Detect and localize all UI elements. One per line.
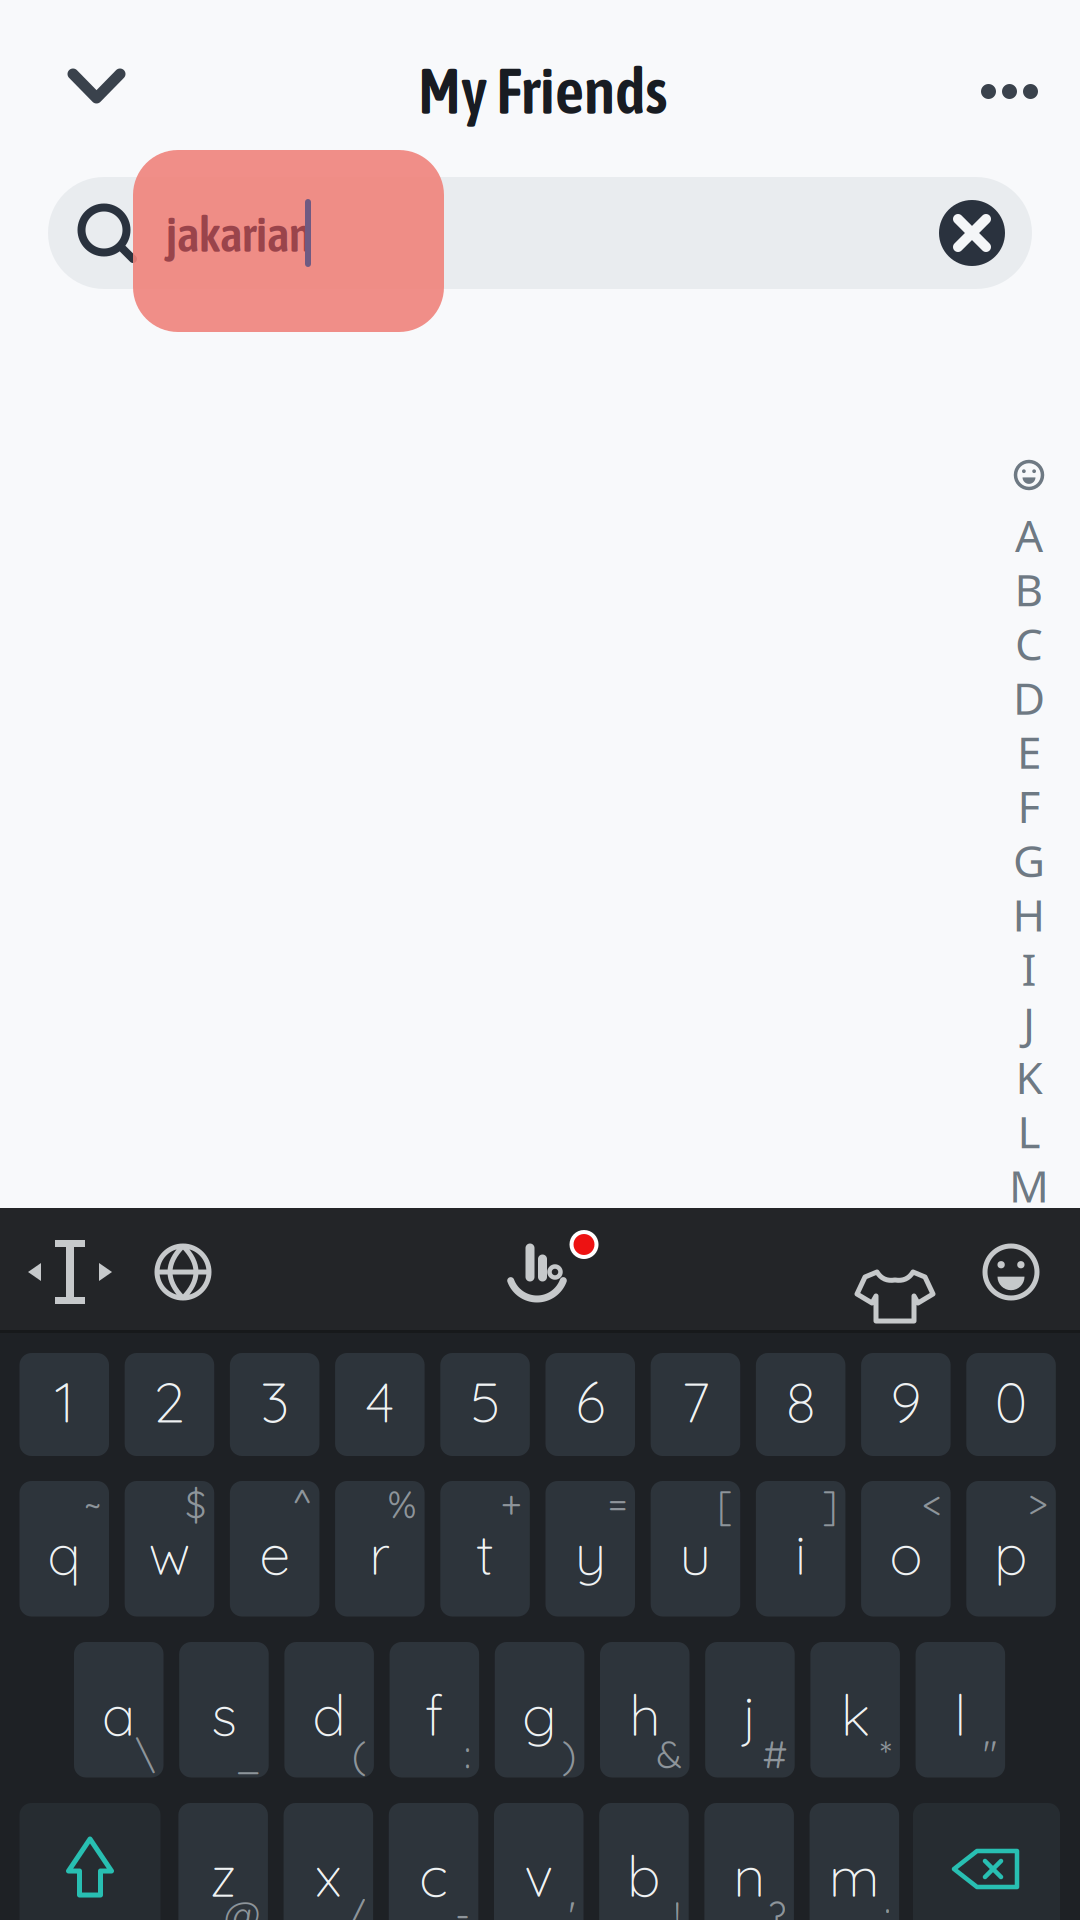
button[interactable]: %	[335, 1481, 425, 1616]
button[interactable]: 3	[230, 1353, 319, 1456]
button[interactable]: <	[861, 1481, 951, 1616]
button[interactable]: @	[178, 1803, 268, 1920]
button[interactable]: D	[999, 673, 1059, 723]
button[interactable]: 6	[545, 1353, 635, 1456]
staticText: j	[742, 1680, 757, 1750]
staticText: v	[524, 1841, 553, 1911]
staticText: 9	[890, 1366, 921, 1436]
button[interactable]: H	[999, 889, 1059, 939]
button[interactable]: M	[999, 1160, 1059, 1210]
button[interactable]: -	[389, 1803, 478, 1920]
button[interactable]	[939, 200, 1005, 266]
button[interactable]: :	[810, 1803, 899, 1920]
button[interactable]: /	[284, 1803, 373, 1920]
staticText: E	[1017, 723, 1041, 781]
staticText: ~	[84, 1481, 101, 1528]
button[interactable]: '	[494, 1803, 583, 1920]
staticText: *	[880, 1731, 892, 1777]
button[interactable]: L	[999, 1106, 1059, 1156]
button[interactable]	[913, 1803, 1060, 1920]
staticText: B	[1014, 560, 1043, 618]
button[interactable]	[19, 1803, 160, 1920]
staticText: 7	[681, 1366, 709, 1436]
staticText: ]	[822, 1481, 837, 1528]
staticText: r	[369, 1519, 390, 1589]
button[interactable]: ?	[704, 1803, 794, 1920]
staticText: "	[983, 1731, 997, 1777]
staticText: s	[211, 1680, 237, 1750]
button[interactable]: >	[966, 1481, 1056, 1616]
button[interactable]: 7	[651, 1353, 740, 1456]
staticText: 1	[54, 1366, 74, 1436]
button[interactable]: (	[284, 1642, 374, 1777]
button[interactable]: :	[390, 1642, 479, 1777]
staticText: /	[346, 1892, 365, 1920]
staticText: %	[388, 1481, 417, 1528]
button[interactable]: G	[999, 835, 1059, 885]
staticText: A	[1015, 506, 1043, 564]
staticText: I	[1021, 939, 1036, 998]
button[interactable]	[153, 1208, 213, 1333]
button[interactable]	[954, 78, 1017, 99]
button[interactable]	[48, 177, 1032, 289]
button[interactable]: =	[545, 1481, 635, 1616]
button[interactable]: &	[600, 1642, 689, 1777]
button[interactable]: 0	[966, 1353, 1056, 1456]
button[interactable]: 1	[19, 1353, 109, 1456]
button[interactable]: [	[651, 1481, 740, 1616]
button[interactable]	[59, 65, 134, 107]
button[interactable]: B	[999, 564, 1059, 614]
staticText: C	[1015, 614, 1043, 673]
staticText: 4	[366, 1366, 394, 1436]
staticText: $	[185, 1481, 206, 1528]
button[interactable]: F	[999, 781, 1059, 831]
staticText: ^	[292, 1481, 311, 1528]
button[interactable]: \	[74, 1642, 163, 1777]
button[interactable]: 5	[440, 1353, 530, 1456]
button[interactable]: ]	[756, 1481, 845, 1616]
button[interactable]: +	[440, 1481, 530, 1616]
staticText: @	[224, 1892, 260, 1920]
button[interactable]: ~	[19, 1481, 109, 1616]
button[interactable]: K	[999, 1052, 1059, 1102]
staticText: f	[425, 1680, 444, 1750]
button[interactable]: I	[999, 944, 1059, 994]
staticText: w	[148, 1519, 190, 1589]
staticText: q	[47, 1519, 81, 1589]
staticText: >	[1028, 1481, 1048, 1528]
button[interactable]	[28, 1208, 112, 1333]
button[interactable]: 4	[335, 1353, 425, 1456]
staticText: 0	[995, 1366, 1028, 1436]
staticText: +	[501, 1481, 522, 1528]
button[interactable]: *	[810, 1642, 900, 1777]
button[interactable]: A	[999, 510, 1059, 560]
staticText: o	[889, 1519, 922, 1589]
staticText: p	[994, 1519, 1028, 1589]
staticText: H	[1012, 885, 1045, 944]
staticText: t	[476, 1519, 494, 1589]
staticText: y	[575, 1519, 606, 1589]
button[interactable]	[999, 445, 1059, 505]
button[interactable]: !	[599, 1803, 689, 1920]
button[interactable]	[857, 1208, 933, 1333]
staticText: g	[522, 1680, 557, 1750]
staticText: <	[923, 1481, 943, 1528]
staticText: J	[1023, 994, 1035, 1052]
button[interactable]	[485, 1208, 605, 1333]
button[interactable]: "	[916, 1642, 1005, 1777]
button[interactable]: #	[705, 1642, 795, 1777]
button[interactable]: 2	[125, 1353, 214, 1456]
staticText: -	[455, 1892, 470, 1920]
button[interactable]: ^	[230, 1481, 319, 1616]
button[interactable]: 9	[861, 1353, 951, 1456]
button[interactable]: J	[999, 998, 1059, 1048]
staticText: M	[1009, 1156, 1049, 1215]
button[interactable]: )	[495, 1642, 584, 1777]
button[interactable]	[979, 1208, 1043, 1333]
button[interactable]: 8	[756, 1353, 845, 1456]
button[interactable]: C	[999, 618, 1059, 668]
staticText: _	[236, 1731, 261, 1777]
button[interactable]: $	[125, 1481, 214, 1616]
button[interactable]: E	[999, 727, 1059, 777]
button[interactable]: _	[179, 1642, 269, 1777]
